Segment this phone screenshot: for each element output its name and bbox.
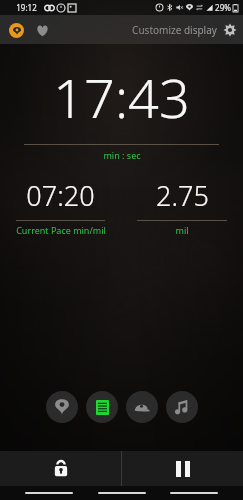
- staticText: min : sec: [103, 149, 141, 161]
- staticText: Current Pace min/mil: [16, 224, 106, 236]
- button[interactable]: Music: [166, 391, 198, 423]
- button[interactable]: Map: [46, 391, 78, 423]
- button[interactable]: GPS status: [6, 20, 26, 40]
- button[interactable]: Workout details: [86, 391, 118, 423]
- button[interactable]: Pause workout: [122, 451, 243, 486]
- button[interactable]: Navigation: [25, 492, 73, 494]
- staticText: 2.75: [156, 177, 209, 214]
- button[interactable]: Navigation: [98, 492, 146, 494]
- button[interactable]: Customize display: [132, 23, 243, 37]
- staticText: 07:20: [26, 177, 95, 214]
- staticText: 19:12: [16, 2, 37, 13]
- staticText: 17:43: [53, 60, 190, 134]
- button[interactable]: Coach: [126, 391, 158, 423]
- button[interactable]: Navigation: [170, 492, 218, 494]
- button[interactable]: Heart rate: [32, 20, 52, 40]
- button[interactable]: Lock screen: [0, 451, 121, 486]
- staticText: mil: [175, 224, 189, 236]
- staticText: Customize display: [132, 23, 217, 37]
- staticText: 29%: [215, 2, 231, 13]
